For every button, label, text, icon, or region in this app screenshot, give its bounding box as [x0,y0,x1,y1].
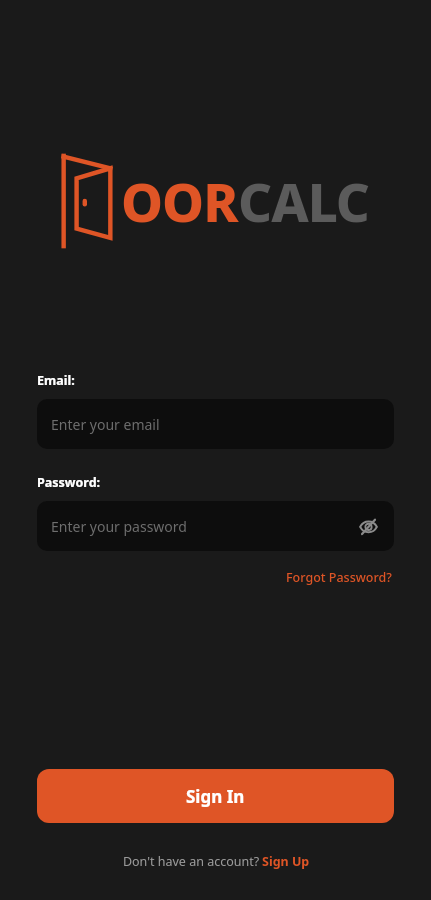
staticText: Sign In [186,785,245,808]
staticText: CALC [238,165,370,237]
staticText: Password: [37,474,101,491]
button[interactable]: Show password [354,512,382,540]
button[interactable]: Enter your password [37,501,394,551]
staticText: Don't have an account? [121,853,261,870]
staticText: Sign Up [262,853,310,870]
staticText: OOR [121,165,238,237]
button[interactable]: Sign In [37,769,394,823]
button[interactable]: Forgot Password? [284,566,394,589]
button[interactable]: Sign Up [261,851,311,872]
staticText: Forgot Password? [286,569,392,586]
staticText: Enter your email [51,415,160,434]
button[interactable]: Enter your email [37,399,394,449]
staticText: Email: [37,372,75,389]
staticText: Enter your password [51,517,187,536]
